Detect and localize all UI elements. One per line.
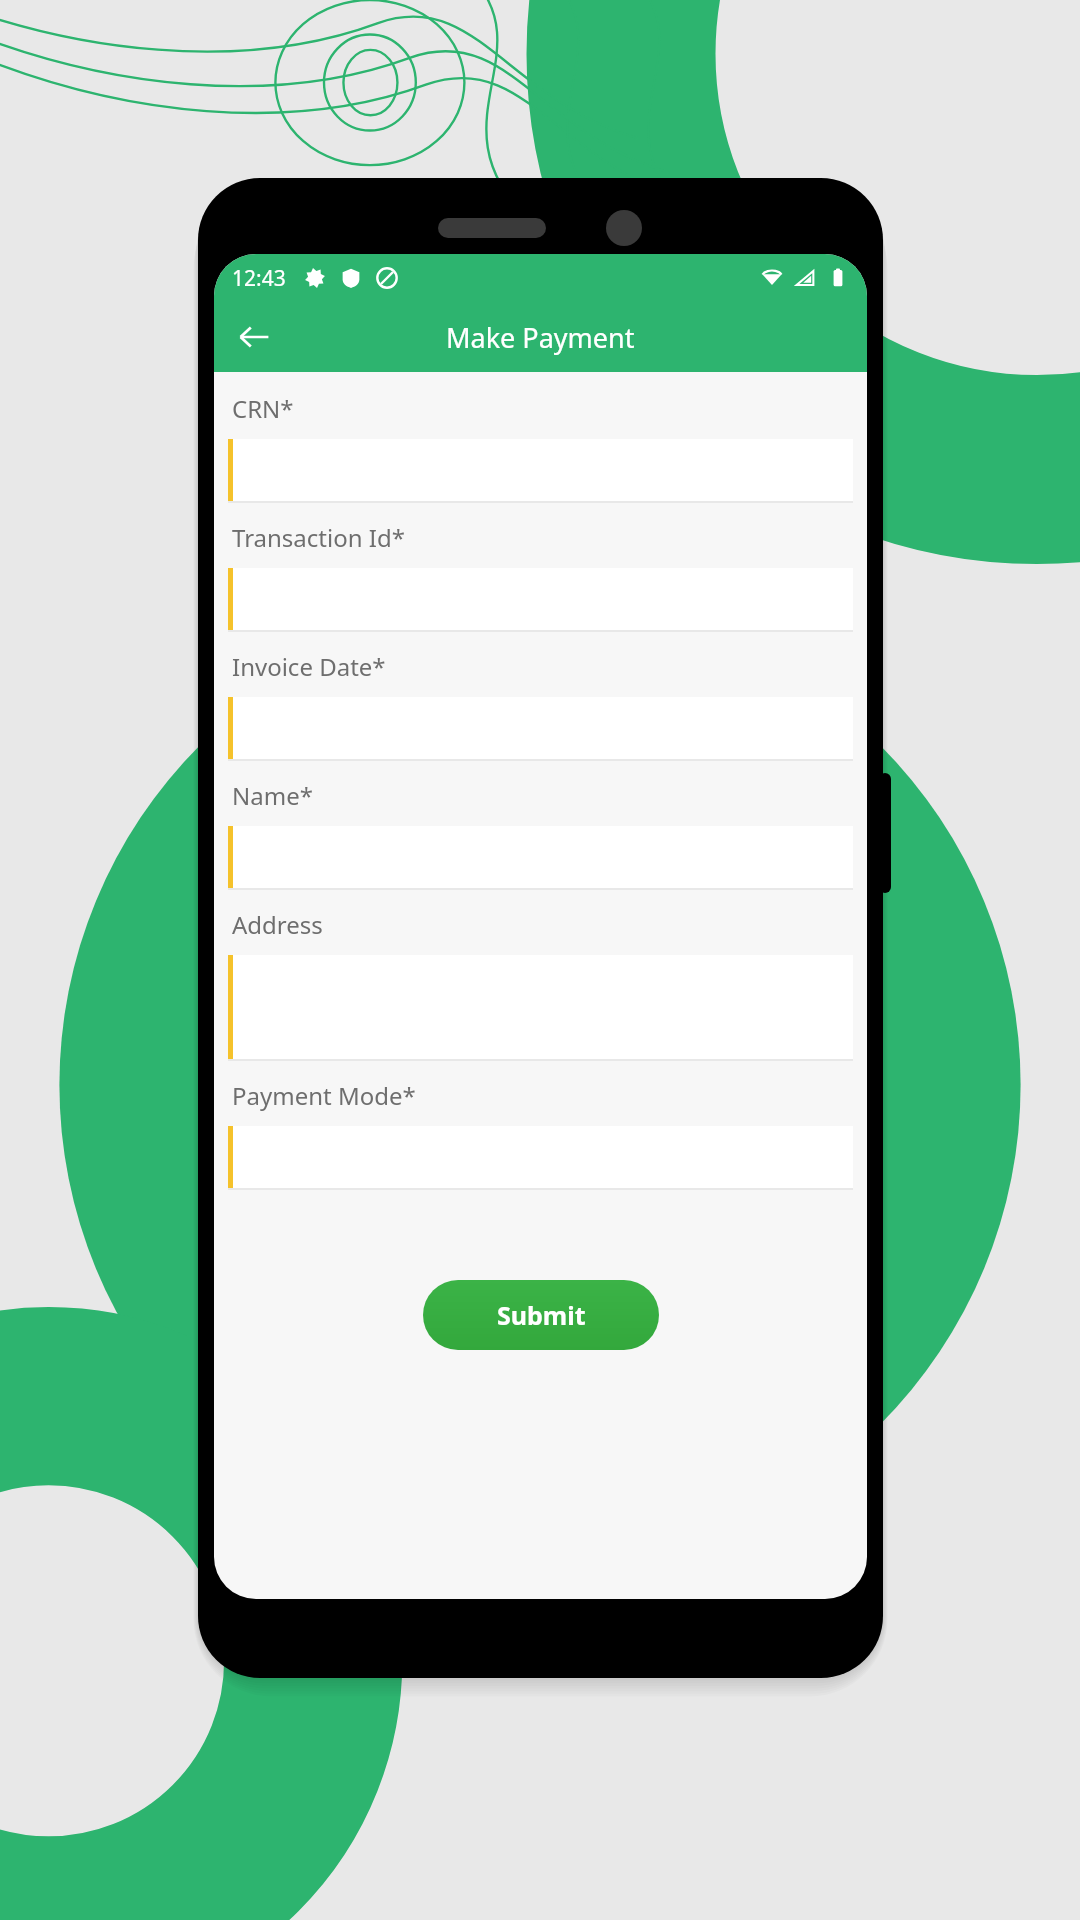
button[interactable]: Submit (423, 1280, 659, 1350)
staticText: Submit (497, 1298, 586, 1332)
button[interactable] (228, 439, 853, 501)
staticText: CRN* (232, 392, 294, 425)
button[interactable] (228, 1126, 853, 1188)
staticText: Payment Mode* (232, 1079, 416, 1112)
staticText: 12:43 (232, 264, 286, 293)
button[interactable] (228, 568, 853, 630)
button[interactable] (228, 697, 853, 759)
staticText: Invoice Date* (232, 650, 386, 683)
staticText: Name* (232, 779, 313, 812)
button[interactable] (228, 955, 853, 1059)
staticText: Make Payment (446, 319, 635, 356)
button[interactable] (228, 826, 853, 888)
staticText: Address (232, 908, 323, 941)
button[interactable]: Back (226, 309, 282, 365)
staticText: Transaction Id* (232, 521, 405, 554)
